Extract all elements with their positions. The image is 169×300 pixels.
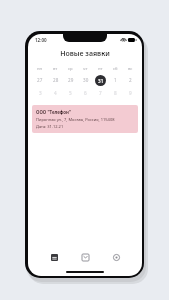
staticText: 1: [114, 77, 117, 83]
staticText: 31: [98, 78, 104, 84]
button[interactable]: 6: [78, 87, 93, 99]
staticText: пт: [98, 66, 103, 72]
staticText: ООО "Телефон": [36, 109, 72, 115]
button[interactable]: 5: [63, 87, 78, 99]
staticText: 27: [37, 77, 43, 83]
button[interactable]: 2: [123, 73, 138, 87]
staticText: чт: [83, 66, 88, 72]
staticText: 12:00: [35, 37, 47, 43]
staticText: 30: [83, 77, 89, 83]
button[interactable]: 9: [123, 87, 138, 99]
button[interactable]: 30: [78, 73, 93, 87]
staticText: Пиронная ул., 7, Москва, Россия, 115408: [36, 117, 115, 122]
staticText: вт: [53, 66, 58, 72]
staticText: 2: [129, 77, 132, 83]
staticText: 3: [39, 90, 42, 96]
staticText: 9: [129, 90, 132, 96]
staticText: 6: [84, 90, 87, 96]
staticText: вс: [128, 66, 133, 72]
button[interactable]: ООО "Телефон": [32, 105, 138, 133]
staticText: пн: [37, 66, 43, 72]
button[interactable]: 1: [108, 73, 123, 87]
button[interactable]: Settings: [101, 247, 132, 267]
button[interactable]: Requests: [38, 247, 70, 267]
staticText: 5: [69, 90, 72, 96]
staticText: 8: [114, 90, 117, 96]
staticText: 7: [99, 90, 102, 96]
staticText: 28: [53, 77, 59, 83]
button[interactable]: 7: [93, 87, 108, 99]
staticText: 4: [54, 90, 57, 96]
button[interactable]: Messages: [70, 247, 101, 267]
button[interactable]: 29: [63, 73, 78, 87]
button[interactable]: 4: [48, 87, 63, 99]
staticText: ср: [68, 66, 73, 72]
button[interactable]: 27: [32, 73, 48, 87]
staticText: Дата: 31.12.21: [36, 124, 64, 129]
button[interactable]: 3: [32, 87, 48, 99]
staticText: сб: [113, 66, 118, 72]
button[interactable]: 28: [48, 73, 63, 87]
staticText: Новые заявки: [60, 49, 110, 59]
button[interactable]: 31: [93, 73, 108, 87]
button[interactable]: 8: [108, 87, 123, 99]
staticText: 29: [68, 77, 74, 83]
